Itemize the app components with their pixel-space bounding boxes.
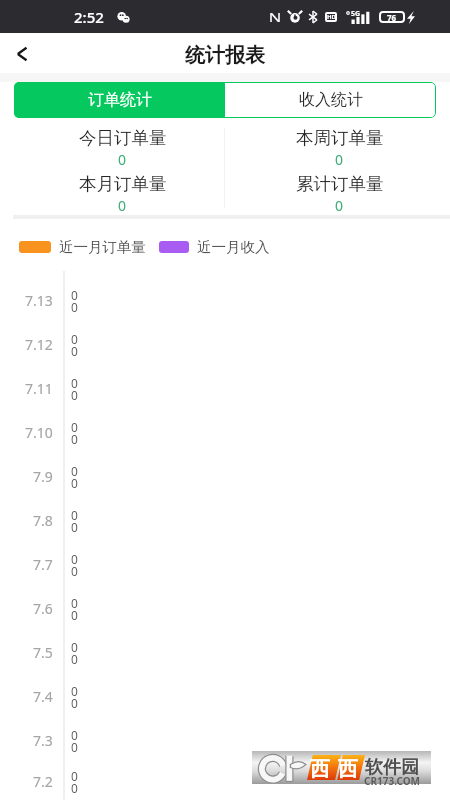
staticText: 7.7 (33, 555, 53, 574)
staticText: 软件园 (365, 756, 419, 779)
staticText: 统计报表 (185, 43, 265, 68)
staticText: 西 (338, 757, 358, 782)
staticText: 0 (71, 475, 78, 491)
button[interactable]: 收入统计 (225, 82, 436, 118)
staticText: 0 (71, 563, 78, 579)
staticText: 0 (118, 150, 127, 169)
staticText: 0 (335, 150, 344, 169)
staticText: 0 (71, 331, 78, 347)
staticText: 5G (351, 9, 361, 19)
staticText: 0 (118, 196, 127, 215)
button[interactable]: 订单统计 (14, 82, 225, 118)
staticText: 本月订单量 (79, 173, 167, 195)
staticText: 0 (71, 431, 78, 447)
staticText: CR173.COM (364, 774, 421, 788)
staticText: 西 (310, 757, 330, 782)
staticText: 7.4 (33, 687, 53, 706)
staticText: 0 (71, 375, 78, 391)
staticText: 收入统计 (299, 90, 363, 110)
staticText: 本周订单量 (296, 127, 384, 149)
staticText: 0 (335, 196, 344, 215)
staticText: 0 (71, 463, 78, 479)
staticText: 0 (71, 651, 78, 667)
staticText: 7.6 (33, 599, 53, 618)
staticText: 0 (71, 695, 78, 711)
staticText: 0 (71, 507, 78, 523)
staticText: 0 (71, 387, 78, 403)
button[interactable]: Back (0, 33, 44, 73)
staticText: 0 (71, 551, 78, 567)
staticText: 0 (71, 683, 78, 699)
staticText: 0 (71, 739, 78, 755)
staticText: 7.13 (25, 291, 53, 310)
staticText: 近一月收入 (197, 238, 270, 256)
staticText: 7.2 (33, 772, 53, 791)
staticText: 7.11 (25, 379, 53, 398)
staticText: 今日订单量 (79, 127, 167, 149)
staticText: 近一月订单量 (59, 238, 146, 256)
staticText: 7.9 (33, 467, 53, 486)
staticText: 累计订单量 (296, 173, 384, 195)
staticText: 0 (71, 299, 78, 315)
staticText: 7.3 (33, 731, 53, 750)
staticText: 0 (71, 780, 78, 796)
staticText: 0 (71, 639, 78, 655)
staticText: 0 (71, 595, 78, 611)
staticText: 0 (71, 287, 78, 303)
staticText: 2:52 (74, 7, 104, 27)
staticText: 0 (71, 607, 78, 623)
staticText: 0 (71, 768, 78, 784)
staticText: HD (327, 13, 336, 21)
staticText: 订单统计 (88, 90, 152, 110)
staticText: 7.5 (33, 643, 53, 662)
staticText: 0 (71, 727, 78, 743)
staticText: 0 (71, 519, 78, 535)
staticText: 7.8 (33, 511, 53, 530)
staticText: 76 (387, 12, 397, 23)
staticText: 0 (71, 343, 78, 359)
staticText: 7.12 (25, 335, 53, 354)
staticText: 7.10 (25, 423, 53, 442)
staticText: 0 (71, 419, 78, 435)
